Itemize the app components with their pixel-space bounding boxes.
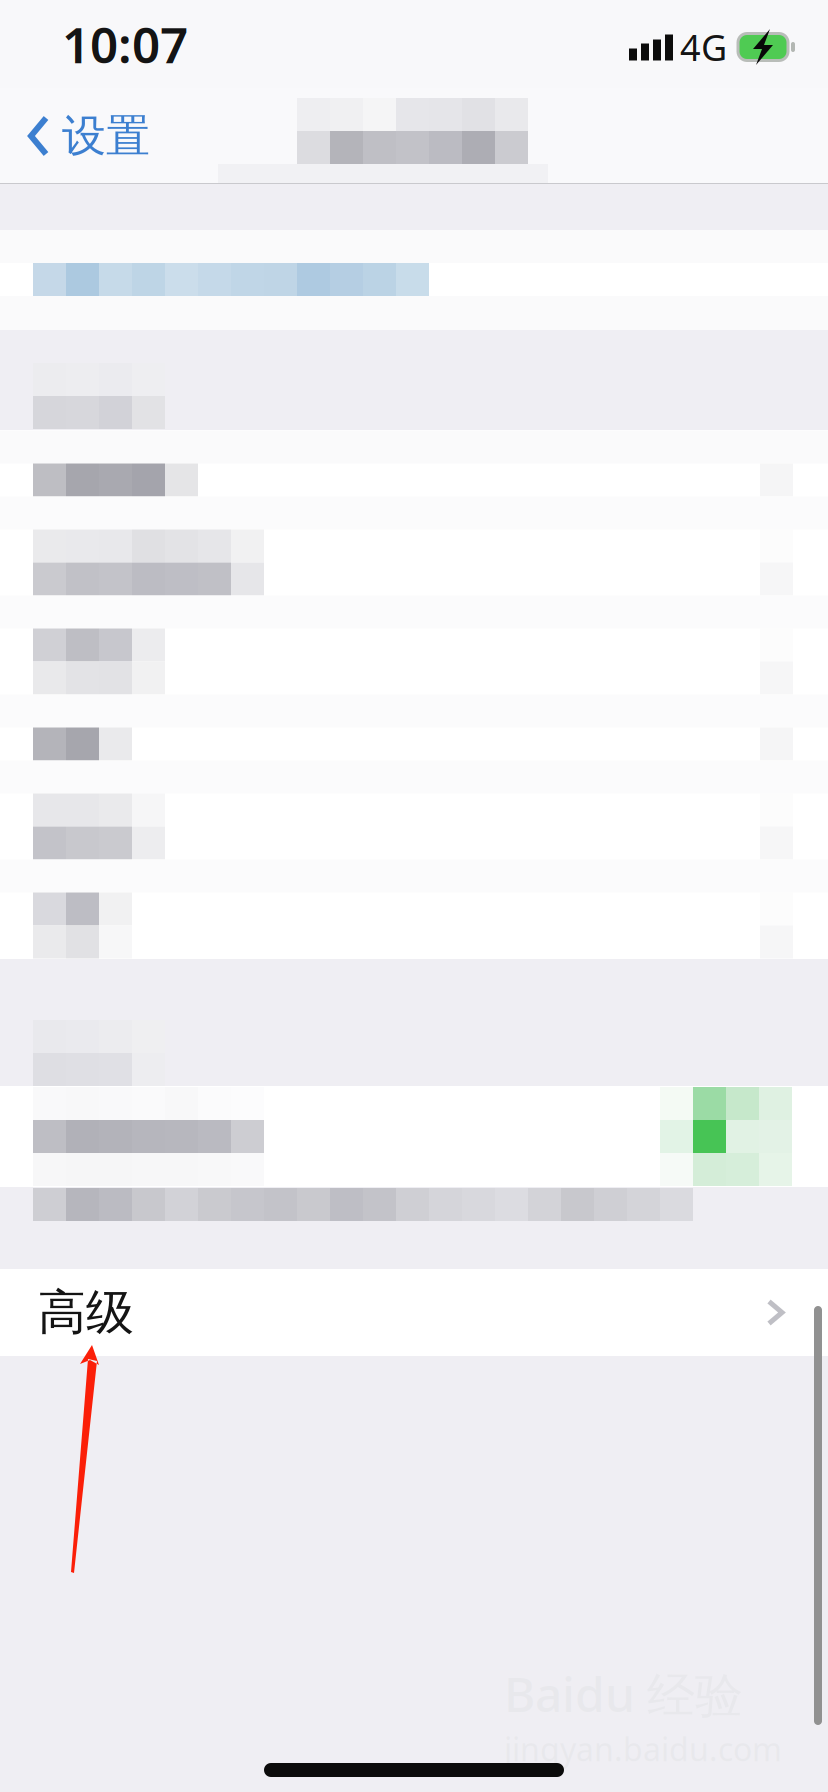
staticText: 4G [680,23,727,71]
button[interactable]: Settings item [0,727,828,760]
button[interactable]: Toggle setting, on [0,1086,828,1187]
button[interactable]: 高级 [0,1269,828,1356]
staticText: 10:07 [62,11,188,77]
button[interactable]: Settings item [0,628,828,694]
button[interactable]: Account link [0,230,828,330]
button[interactable]: Settings item [0,463,828,496]
staticText: 设置 [62,109,150,163]
staticText: 高级 [38,1283,134,1342]
button[interactable]: Settings item [0,793,828,859]
staticText: jingyan.baidu.com [504,1727,782,1770]
button[interactable]: Settings item [0,892,828,958]
button[interactable]: Settings item [0,529,828,595]
button[interactable]: 设置 [0,88,170,184]
